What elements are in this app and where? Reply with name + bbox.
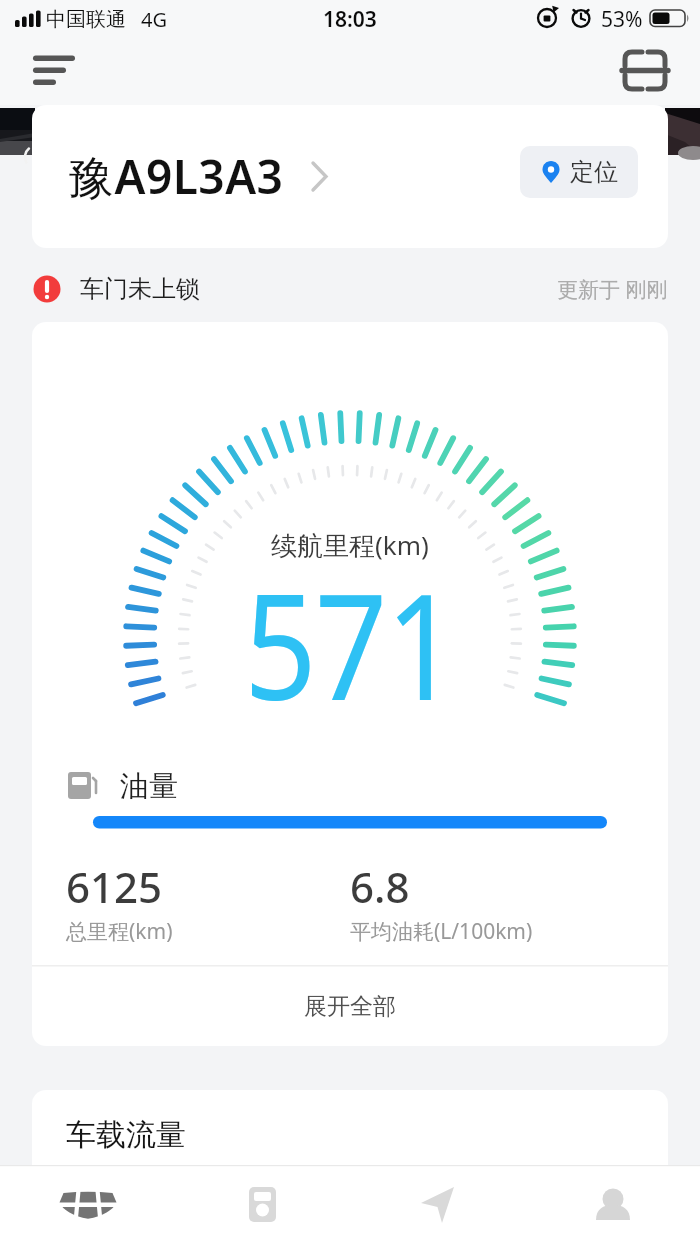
staticText: 车载流量 — [66, 1116, 186, 1154]
staticText: 定位 — [570, 157, 618, 187]
staticText: 571 — [244, 544, 457, 743]
button[interactable] — [350, 1165, 525, 1244]
staticText: 总里程(km) — [66, 917, 173, 946]
button[interactable]: 定位 — [520, 146, 638, 198]
button[interactable] — [0, 1165, 175, 1244]
staticText: 6.8 — [350, 858, 410, 915]
staticText: 更新于 刚刚 — [557, 275, 668, 304]
staticText: 6125 — [66, 858, 163, 915]
staticText: 53% — [601, 5, 643, 34]
button[interactable]: 豫A9L3A3 — [68, 105, 284, 248]
staticText: 续航里程(km) — [271, 527, 429, 563]
staticText: 展开全部 — [304, 992, 396, 1021]
staticText: 中国联通 — [46, 7, 126, 32]
button[interactable]: 展开全部 — [32, 967, 668, 1046]
staticText: 18:03 — [323, 5, 377, 34]
staticText: 车门未上锁 — [80, 274, 200, 304]
button[interactable] — [20, 44, 88, 105]
button[interactable] — [175, 1165, 350, 1244]
staticText: 油量 — [120, 768, 178, 800]
button[interactable] — [612, 44, 680, 105]
staticText: 平均油耗(L/100km) — [350, 917, 533, 946]
staticText: 豫A9L3A3 — [68, 145, 284, 208]
staticText: 4G — [141, 6, 167, 33]
button[interactable] — [525, 1165, 700, 1244]
